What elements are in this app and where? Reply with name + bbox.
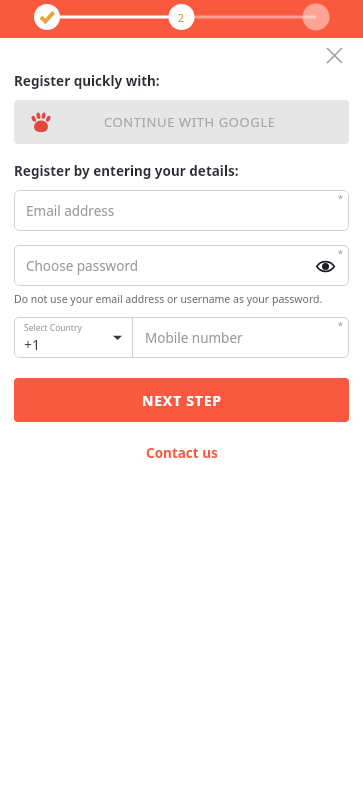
staticText: Email address (26, 202, 115, 220)
button[interactable]: Email address (14, 190, 349, 231)
staticText: Mobile number (145, 329, 243, 347)
staticText: Register by entering your details: (14, 162, 239, 180)
button[interactable]: CONTINUE WITH GOOGLE (14, 100, 349, 144)
staticText: Register quickly with: (14, 72, 160, 90)
button[interactable]: Mobile number (133, 317, 349, 358)
staticText: * (338, 192, 343, 204)
staticText: CONTINUE WITH GOOGLE (104, 113, 276, 131)
staticText: * (338, 319, 343, 331)
staticText: +1 (24, 335, 41, 354)
staticText: Do not use your email address or usernam… (14, 292, 323, 306)
staticText: Select Country (24, 322, 82, 334)
staticText: 2 (178, 11, 185, 25)
staticText: NEXT STEP (142, 391, 222, 410)
button[interactable]: Show password (313, 254, 337, 278)
button[interactable]: Choose password (14, 245, 349, 286)
button[interactable]: Close (319, 40, 349, 70)
button[interactable]: NEXT STEP (14, 378, 349, 422)
button[interactable]: Contact us (138, 440, 226, 466)
staticText: Choose password (26, 257, 138, 275)
staticText: * (338, 247, 343, 259)
button[interactable]: Select Country (14, 317, 132, 358)
staticText: Contact us (146, 444, 218, 462)
